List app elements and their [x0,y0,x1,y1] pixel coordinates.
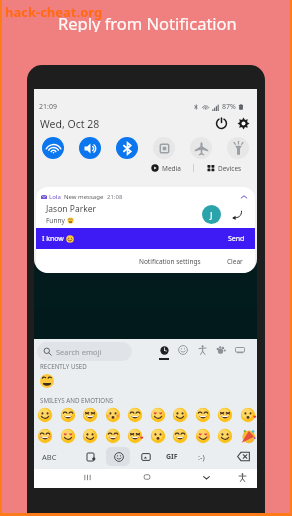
button[interactable]: Emoji [105,428,121,444]
button[interactable]: Quick setting [190,137,212,159]
staticText: Funny [46,216,65,225]
button[interactable]: Emoji [105,407,121,423]
staticText: Send [228,234,245,244]
button[interactable]: Emoji [172,428,188,444]
staticText: Devices [218,164,242,173]
button[interactable]: Quick setting [227,137,249,159]
button[interactable]: Clear [224,253,246,269]
staticText: RECENTLY USED [40,362,87,370]
button[interactable]: Emoji [195,407,211,423]
staticText: Media [162,164,181,173]
button[interactable]: Reply [231,209,243,221]
staticText: Wed, Oct 28 [40,117,100,131]
button[interactable]: Quick setting [153,137,175,159]
button[interactable]: Emoji category [174,341,192,359]
button[interactable]: Emoji [150,407,166,423]
staticText: 21:09 [39,102,57,112]
button[interactable]: Emoji [82,428,98,444]
staticText: I know [42,234,64,244]
button[interactable]: Emoji [37,407,53,423]
staticText: Notification settings [139,257,201,266]
staticText: Jason Parker [46,203,97,215]
button[interactable]: Emoji [195,428,211,444]
button[interactable]: Emoji [82,407,98,423]
button[interactable]: Collapse notification [239,192,249,202]
button[interactable]: Recent apps [79,469,95,485]
staticText: hack-cheat.org [5,3,103,21]
button[interactable]: Quick setting [116,137,138,159]
button[interactable]: Media [147,161,185,175]
button[interactable]: Devices [203,161,246,175]
button[interactable]: :-) [191,447,211,466]
button[interactable]: Home [139,469,155,485]
button[interactable]: Emoji [217,407,233,423]
button[interactable]: Search emoji [37,342,132,361]
button[interactable]: ABC [39,447,59,466]
button[interactable]: Keyboard action [234,447,253,466]
button[interactable]: Notification settings [139,253,201,269]
staticText: Clear [227,257,243,266]
button[interactable]: Emoji category [231,341,249,359]
button[interactable]: Back [198,469,214,485]
staticText: SMILEYS AND EMOTIONS [40,396,114,404]
button[interactable]: Emoji [60,428,76,444]
staticText: J [210,209,213,221]
staticText: Reply from Notification [58,12,237,32]
staticText: Search emoji [56,347,102,357]
button[interactable]: Settings [236,116,251,131]
button[interactable]: Emoji [127,428,143,444]
staticText: New message [64,193,104,201]
button[interactable]: Emoji [217,428,233,444]
button[interactable]: Emoji [240,428,256,444]
staticText: 21:08 [107,193,123,201]
staticText: Lola [49,193,61,201]
staticText: ABC [42,452,57,462]
button[interactable]: Recently used emoji [39,373,55,389]
button[interactable]: Emoji [37,428,53,444]
button[interactable]: Emoji category [194,341,212,359]
staticText: GIF [166,452,178,462]
button[interactable]: Emoji [150,428,166,444]
button[interactable]: Accessibility [234,469,250,485]
button[interactable]: Power [214,116,229,131]
button[interactable]: Emoji [172,407,188,423]
button[interactable]: J [202,205,221,224]
button[interactable]: Keyboard action [136,447,155,466]
button[interactable]: Keyboard action [81,447,100,466]
button[interactable]: Emoji [127,407,143,423]
button[interactable]: Emoji [240,407,256,423]
button[interactable]: GIF [162,447,182,466]
button[interactable]: Emoji [60,407,76,423]
staticText: :-) [198,452,205,462]
button[interactable]: Emoji category [155,341,173,359]
button[interactable]: Keyboard action [109,447,128,466]
button[interactable]: Quick setting [42,137,64,159]
button[interactable]: Emoji category [212,341,230,359]
staticText: 87% [222,102,236,112]
button[interactable]: I know [36,228,255,249]
button[interactable]: Quick setting [79,137,101,159]
